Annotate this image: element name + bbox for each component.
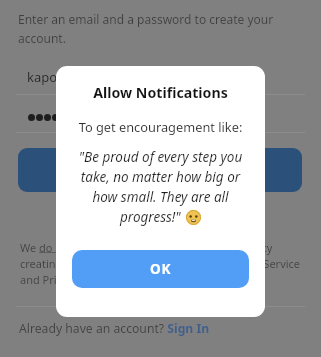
staticText: progress!" <box>120 208 181 226</box>
button[interactable]: OK <box>72 250 249 288</box>
button[interactable] <box>18 148 302 192</box>
staticText: Allow Notifications <box>56 83 265 102</box>
staticText: To get encouragement like: <box>56 118 265 135</box>
button[interactable]: Already have an account? Sign In <box>19 320 210 337</box>
staticText: "Be proud of every step you take, no mat… <box>68 148 253 206</box>
staticText: OK <box>150 260 172 278</box>
staticText: Enter an email and a password to create … <box>18 11 274 46</box>
staticText: We do not sell your data. We fully respe… <box>20 240 301 287</box>
staticText: kapo <box>27 68 58 86</box>
staticText: Already have an account? Sign In <box>19 320 210 337</box>
